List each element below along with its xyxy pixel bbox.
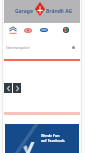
button[interactable]: Werde Fan [5, 124, 79, 153]
staticText: auf Facebook. [41, 138, 66, 143]
button[interactable]: Seitennavigation [4, 38, 80, 57]
staticText: Garage [15, 8, 33, 15]
button[interactable]: Previous page [4, 83, 12, 93]
button[interactable]: Next page [13, 83, 21, 93]
staticText: Brändli AG [46, 8, 73, 15]
staticText: Seitennavigation [6, 46, 30, 50]
staticText: Werde Fan [41, 133, 60, 138]
